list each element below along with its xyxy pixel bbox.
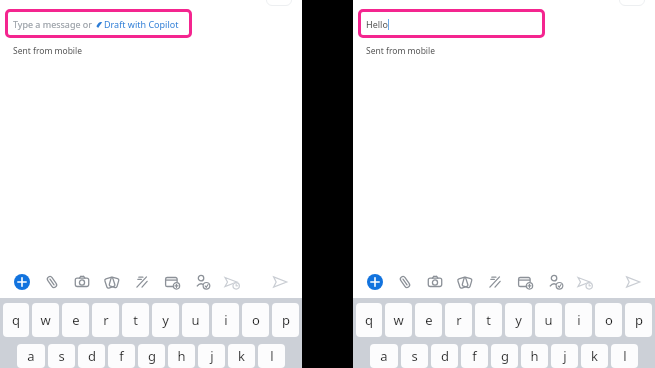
staticText: d bbox=[441, 347, 449, 365]
button[interactable]: d bbox=[78, 344, 105, 368]
staticText: s bbox=[58, 347, 65, 365]
button[interactable]: s bbox=[401, 344, 428, 368]
button[interactable]: u bbox=[535, 303, 562, 337]
staticText: k bbox=[591, 347, 598, 365]
staticText: l bbox=[623, 347, 627, 365]
button[interactable]: y bbox=[152, 303, 179, 337]
staticText: t bbox=[133, 311, 138, 329]
button[interactable]: h bbox=[168, 344, 195, 368]
button[interactable]: h bbox=[521, 344, 548, 368]
button[interactable]: w bbox=[32, 303, 59, 337]
button[interactable]: Availability bbox=[545, 272, 565, 292]
button[interactable]: Add to calendar bbox=[515, 272, 535, 292]
button[interactable]: i bbox=[565, 303, 592, 337]
staticText: j bbox=[210, 347, 214, 365]
staticText: f bbox=[472, 347, 477, 365]
staticText: y bbox=[162, 311, 169, 329]
button[interactable]: p bbox=[625, 303, 652, 337]
staticText: t bbox=[486, 311, 491, 329]
button[interactable]: g bbox=[138, 344, 165, 368]
button[interactable]: f bbox=[461, 344, 488, 368]
staticText: w bbox=[393, 311, 404, 329]
staticText: d bbox=[88, 347, 96, 365]
button[interactable]: e bbox=[415, 303, 442, 337]
button[interactable]: Camera bbox=[425, 272, 445, 292]
staticText: w bbox=[40, 311, 51, 329]
button[interactable]: j bbox=[551, 344, 578, 368]
button[interactable]: t bbox=[122, 303, 149, 337]
button[interactable]: i bbox=[212, 303, 239, 337]
button[interactable]: f bbox=[108, 344, 135, 368]
button[interactable]: s bbox=[48, 344, 75, 368]
staticText: Draft with Copilot bbox=[104, 18, 179, 30]
staticText: g bbox=[501, 347, 509, 365]
button[interactable]: Markup bbox=[132, 272, 152, 292]
button[interactable]: Add to calendar bbox=[162, 272, 182, 292]
button[interactable]: o bbox=[242, 303, 269, 337]
staticText: p bbox=[282, 311, 290, 329]
button[interactable]: e bbox=[62, 303, 89, 337]
staticText: q bbox=[12, 311, 20, 329]
button[interactable]: Hello bbox=[358, 9, 545, 38]
button[interactable]: Add bbox=[365, 272, 385, 292]
staticText: Hello bbox=[366, 18, 388, 30]
staticText: p bbox=[635, 311, 643, 329]
staticText: u bbox=[544, 311, 553, 329]
staticText: e bbox=[425, 311, 433, 329]
button[interactable]: l bbox=[258, 344, 285, 368]
button[interactable]: Send bbox=[270, 272, 290, 292]
button[interactable]: l bbox=[611, 344, 638, 368]
staticText: s bbox=[411, 347, 418, 365]
staticText: i bbox=[577, 311, 581, 329]
button[interactable]: y bbox=[505, 303, 532, 337]
button[interactable]: q bbox=[3, 303, 29, 337]
button[interactable]: t bbox=[475, 303, 502, 337]
staticText: q bbox=[365, 311, 373, 329]
staticText: e bbox=[72, 311, 80, 329]
button[interactable]: k bbox=[228, 344, 255, 368]
button[interactable]: p bbox=[272, 303, 299, 337]
button[interactable]: a bbox=[17, 344, 45, 368]
button[interactable]: o bbox=[595, 303, 622, 337]
button[interactable]: Camera bbox=[72, 272, 92, 292]
staticText: y bbox=[515, 311, 522, 329]
button[interactable]: Stickers bbox=[102, 272, 122, 292]
button[interactable]: r bbox=[92, 303, 119, 337]
staticText: g bbox=[148, 347, 156, 365]
button[interactable]: Send later bbox=[222, 272, 242, 292]
staticText: j bbox=[563, 347, 567, 365]
button[interactable]: a bbox=[370, 344, 398, 368]
staticText: h bbox=[530, 347, 539, 365]
staticText: h bbox=[177, 347, 186, 365]
staticText: Sent from mobile bbox=[13, 45, 83, 57]
staticText: i bbox=[224, 311, 228, 329]
staticText: a bbox=[380, 347, 388, 365]
button[interactable]: k bbox=[581, 344, 608, 368]
button[interactable]: d bbox=[431, 344, 458, 368]
button[interactable]: g bbox=[491, 344, 518, 368]
button[interactable]: j bbox=[198, 344, 225, 368]
staticText: r bbox=[103, 311, 109, 329]
button[interactable]: q bbox=[356, 303, 382, 337]
staticText: Sent from mobile bbox=[366, 45, 436, 57]
button[interactable]: r bbox=[445, 303, 472, 337]
staticText: o bbox=[605, 311, 613, 329]
button[interactable]: Attach file bbox=[395, 272, 415, 292]
button[interactable]: Availability bbox=[192, 272, 212, 292]
staticText: r bbox=[456, 311, 462, 329]
button[interactable]: Send bbox=[623, 272, 643, 292]
staticText: Type a message or bbox=[13, 18, 95, 30]
button[interactable]: Send later bbox=[575, 272, 595, 292]
staticText: a bbox=[27, 347, 35, 365]
staticText: f bbox=[119, 347, 124, 365]
staticText: o bbox=[252, 311, 260, 329]
button[interactable]: Type a message or bbox=[5, 9, 192, 38]
button[interactable]: Stickers bbox=[455, 272, 475, 292]
button[interactable]: Markup bbox=[485, 272, 505, 292]
button[interactable]: u bbox=[182, 303, 209, 337]
staticText: u bbox=[191, 311, 200, 329]
button[interactable]: Attach file bbox=[42, 272, 62, 292]
staticText: l bbox=[270, 347, 274, 365]
button[interactable]: Add bbox=[12, 272, 32, 292]
button[interactable]: w bbox=[385, 303, 412, 337]
